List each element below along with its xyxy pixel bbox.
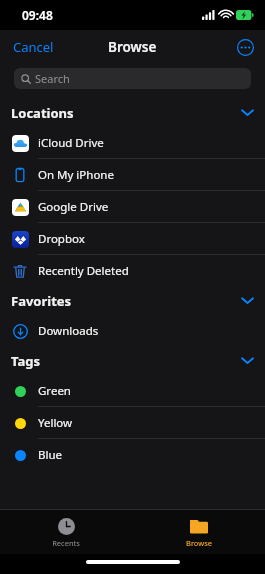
button[interactable]: Locations (0, 98, 265, 127)
staticText: Blue (38, 447, 63, 463)
button[interactable]: Recently Deleted (0, 255, 265, 286)
button[interactable]: Google Drive (0, 191, 265, 222)
button[interactable]: Browse (132, 510, 265, 554)
button[interactable]: iCloud Drive (0, 127, 265, 158)
staticText: Yellow (38, 415, 73, 431)
staticText: On My iPhone (38, 167, 114, 183)
staticText: Browse (108, 38, 157, 56)
staticText: Recently Deleted (38, 263, 129, 279)
staticText: iCloud Drive (38, 135, 104, 151)
button[interactable]: Green (0, 375, 265, 406)
staticText: Browse (186, 538, 212, 548)
staticText: 09:48 (22, 7, 53, 23)
staticText: Downloads (38, 323, 99, 339)
staticText: Tags (11, 352, 40, 370)
button[interactable]: More options (233, 35, 257, 59)
button[interactable]: Cancel (0, 32, 67, 62)
staticText: Search (35, 71, 70, 86)
staticText: Green (38, 383, 71, 399)
button[interactable]: Favorites (0, 286, 265, 315)
staticText: Locations (11, 104, 74, 122)
button[interactable]: Dropbox (0, 223, 265, 254)
button[interactable]: Blue (0, 439, 265, 470)
button[interactable]: Downloads (0, 315, 265, 346)
button[interactable]: Yellow (0, 407, 265, 438)
staticText: Favorites (11, 292, 72, 310)
button[interactable]: On My iPhone (0, 159, 265, 190)
button[interactable]: Recents (0, 510, 132, 554)
button[interactable]: Search (14, 68, 251, 89)
staticText: Dropbox (38, 231, 85, 247)
staticText: Cancel (13, 38, 54, 56)
staticText: Recents (52, 538, 80, 548)
button[interactable]: Tags (0, 346, 265, 375)
staticText: Google Drive (38, 199, 109, 215)
